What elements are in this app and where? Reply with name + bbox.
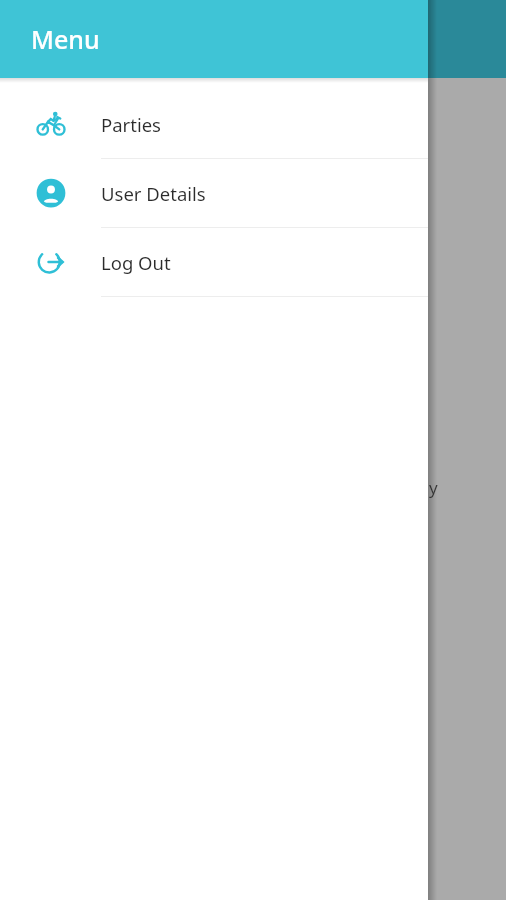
button[interactable]: User Details	[0, 159, 428, 227]
staticText: y	[429, 476, 438, 499]
staticText: Parties	[101, 112, 161, 137]
button[interactable]: Log Out	[0, 228, 428, 296]
button[interactable]: Parties	[0, 90, 428, 158]
staticText: User Details	[101, 181, 206, 206]
staticText: Menu	[31, 22, 100, 56]
staticText: Log Out	[101, 250, 171, 275]
